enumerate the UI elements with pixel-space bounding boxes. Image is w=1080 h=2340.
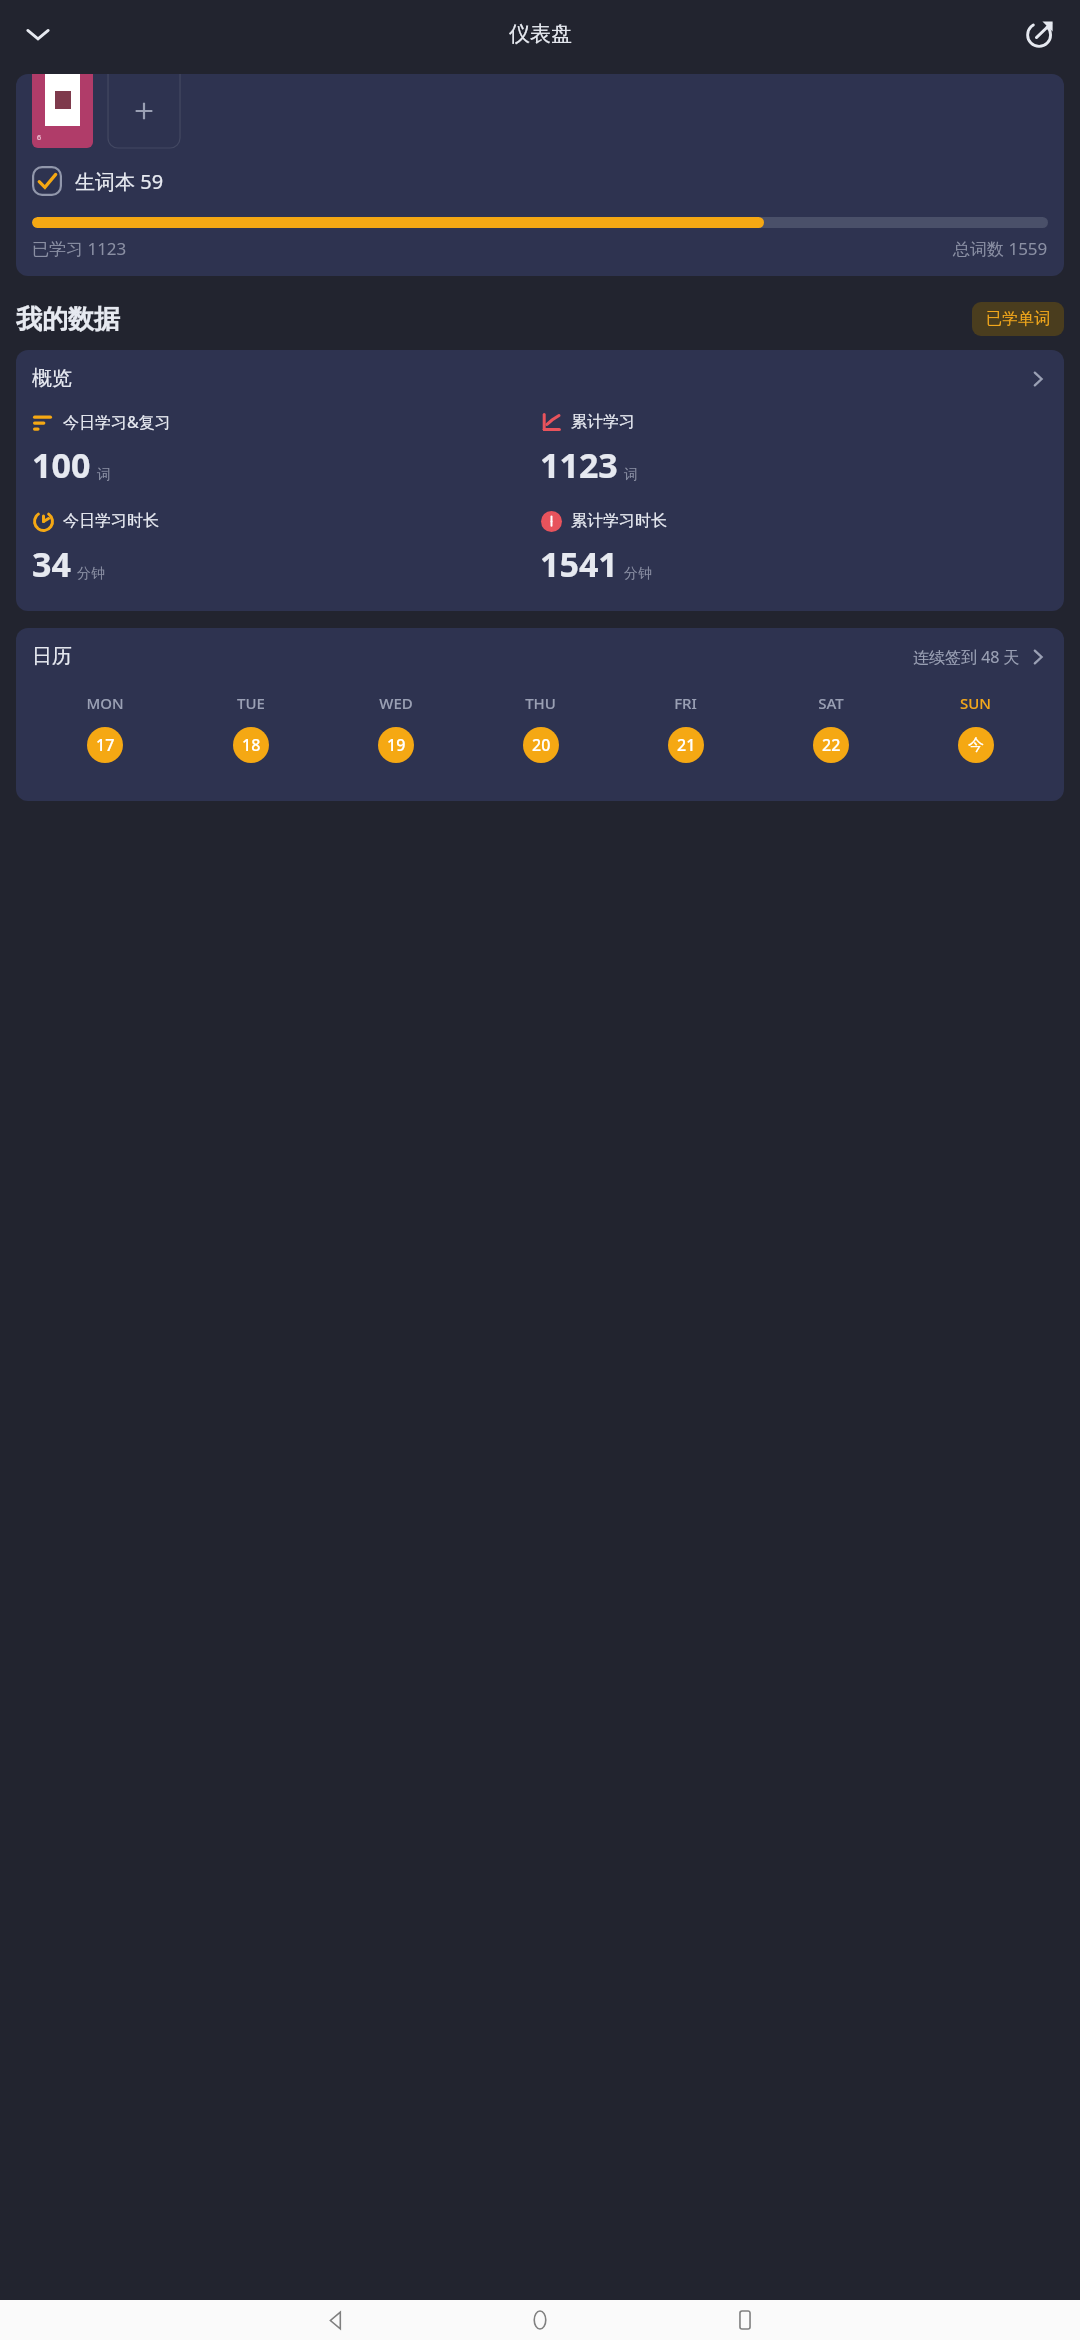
staticText: 已学单词 (986, 309, 1050, 329)
button[interactable]: 19 (378, 727, 414, 763)
staticText: 17 (96, 734, 115, 756)
staticText: 日历 (32, 644, 72, 669)
staticText: MON (86, 693, 124, 713)
button[interactable]: Back (316, 2300, 356, 2340)
button[interactable]: Recents (725, 2300, 765, 2340)
staticText: SUN (960, 693, 991, 713)
staticText: THU (525, 693, 556, 713)
button[interactable]: Collapse (10, 6, 66, 62)
staticText: 今日学习&复习 (63, 411, 171, 433)
button[interactable]: 今 (958, 727, 994, 763)
button[interactable]: 18 (233, 727, 269, 763)
button[interactable]: 生词本 59 (32, 166, 164, 196)
staticText: 累计学习时长 (571, 511, 667, 531)
staticText: 1541 (540, 541, 618, 587)
button[interactable]: Share (1012, 6, 1068, 62)
button[interactable]: Home (520, 2300, 560, 2340)
staticText: 已学习 1123 (32, 237, 127, 260)
button[interactable]: 22 (813, 727, 849, 763)
staticText: 词 (624, 466, 638, 484)
button[interactable]: 6 (16, 74, 1064, 276)
staticText: 总词数 1559 (953, 237, 1048, 260)
button[interactable]: 6 (32, 74, 93, 148)
button[interactable]: 已学单词 (972, 302, 1064, 336)
staticText: SAT (818, 693, 844, 713)
staticText: 分钟 (77, 565, 105, 583)
staticText: 22 (822, 734, 841, 756)
staticText: 生词本 59 (75, 168, 164, 195)
staticText: 20 (532, 734, 551, 756)
button[interactable]: 20 (523, 727, 559, 763)
staticText: 累计学习 (571, 412, 635, 432)
staticText: 今日学习时长 (63, 511, 159, 531)
staticText: TUE (237, 693, 265, 713)
staticText: 今 (968, 735, 984, 755)
staticText: 概览 (32, 366, 72, 391)
button[interactable]: 概览 (16, 350, 1064, 611)
staticText: 我的数据 (16, 303, 120, 336)
staticText: 18 (242, 734, 261, 756)
staticText: 19 (387, 734, 406, 756)
staticText: 词 (97, 466, 111, 484)
button[interactable]: 21 (668, 727, 704, 763)
button[interactable]: Add book (108, 74, 180, 148)
staticText: 21 (677, 734, 696, 756)
button[interactable]: 日历 (16, 628, 1064, 801)
staticText: 100 (32, 442, 91, 488)
staticText: 连续签到 48 天 (913, 646, 1020, 668)
button[interactable]: 17 (87, 727, 123, 763)
staticText: 34 (32, 541, 71, 587)
staticText: 分钟 (624, 565, 652, 583)
staticText: 仪表盘 (509, 21, 572, 47)
staticText: FRI (674, 693, 697, 713)
staticText: 1123 (540, 442, 618, 488)
staticText: 6 (37, 133, 42, 143)
staticText: WED (379, 693, 413, 713)
